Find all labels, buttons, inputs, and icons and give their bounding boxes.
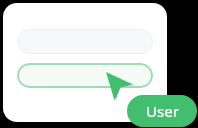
other: Cursor	[103, 70, 137, 104]
button[interactable]: User	[127, 95, 197, 127]
staticText: User	[146, 101, 179, 121]
button[interactable]: Selected field	[17, 63, 153, 88]
button[interactable]: Username field	[3, 3, 167, 122]
button[interactable]: Username field	[17, 29, 153, 54]
